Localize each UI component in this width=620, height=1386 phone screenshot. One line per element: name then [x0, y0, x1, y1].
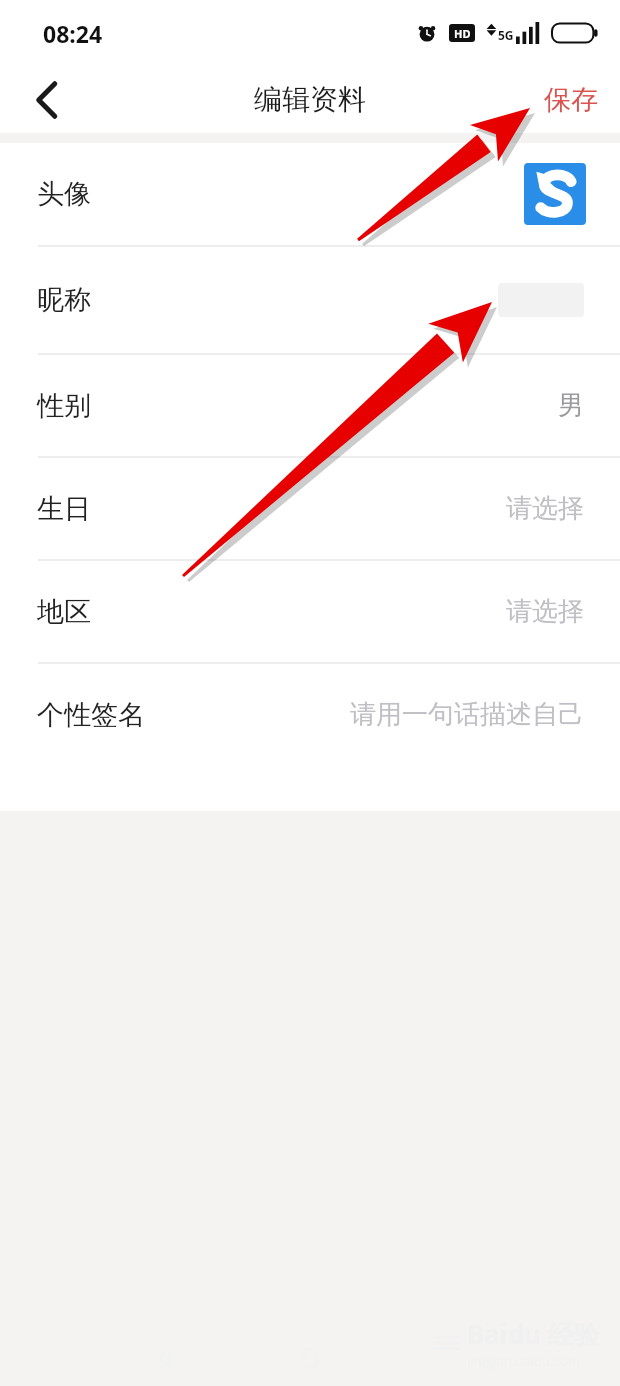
staticText: 男 [558, 389, 584, 422]
button[interactable]: 昵称 [0, 247, 620, 353]
staticText: 头像 [37, 177, 91, 211]
staticText: 请选择 [506, 492, 584, 525]
staticText: 个性签名 [37, 698, 145, 732]
staticText: 编辑资料 [254, 82, 366, 117]
button[interactable]: Back [0, 66, 94, 133]
button[interactable]: 保存 [522, 66, 620, 133]
staticText: 保存 [544, 83, 598, 117]
button[interactable]: 头像 [0, 143, 620, 245]
button[interactable]: 个性签名 [0, 664, 620, 765]
staticText: 请用一句话描述自己 [350, 698, 584, 731]
staticText: 性别 [37, 389, 91, 423]
button[interactable]: 生日 [0, 458, 620, 559]
staticText: 地区 [37, 595, 91, 629]
staticText: 请选择 [506, 595, 584, 628]
staticText: 08:24 [43, 18, 103, 49]
button[interactable]: 地区 [0, 561, 620, 662]
staticText: 5G [498, 27, 514, 43]
staticText: HD [454, 26, 471, 41]
staticText: 昵称 [37, 283, 91, 317]
staticText: 生日 [37, 492, 91, 526]
button[interactable]: 性别 [0, 355, 620, 456]
